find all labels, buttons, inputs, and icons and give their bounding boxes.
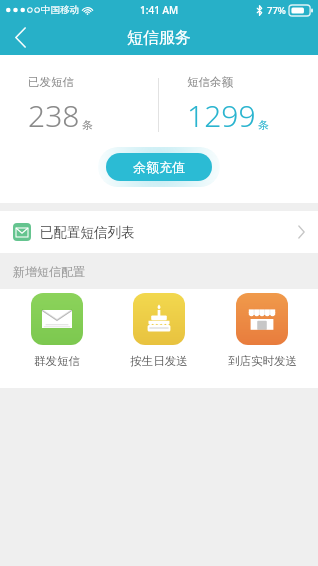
staticText: 新增短信配置 [13, 264, 85, 279]
button[interactable]: In-store SMS [216, 289, 308, 368]
button[interactable]: 已配置短信列表 [0, 211, 318, 253]
staticText: 77% [267, 4, 286, 17]
staticText: 1299 [187, 95, 256, 136]
staticText: 条 [82, 118, 93, 132]
button[interactable]: 余额充值 [106, 153, 212, 181]
button[interactable]: Bulk SMS [11, 289, 103, 368]
staticText: 238 [28, 95, 80, 136]
staticText: 已配置短信列表 [40, 224, 135, 241]
staticText: 余额充值 [133, 159, 185, 175]
button[interactable]: Birthday SMS [113, 289, 205, 368]
staticText: 已发短信 [28, 75, 74, 89]
staticText: 短信余额 [187, 75, 233, 89]
button[interactable]: Back [0, 20, 40, 55]
staticText: 条 [258, 118, 269, 132]
staticText: 短信服务 [127, 28, 191, 48]
staticText: 按生日发送 [130, 354, 188, 368]
staticText: 中国移动 [41, 4, 79, 16]
staticText: 到店实时发送 [228, 354, 297, 368]
staticText: 1:41 AM [140, 3, 179, 17]
staticText: 群发短信 [34, 354, 80, 368]
